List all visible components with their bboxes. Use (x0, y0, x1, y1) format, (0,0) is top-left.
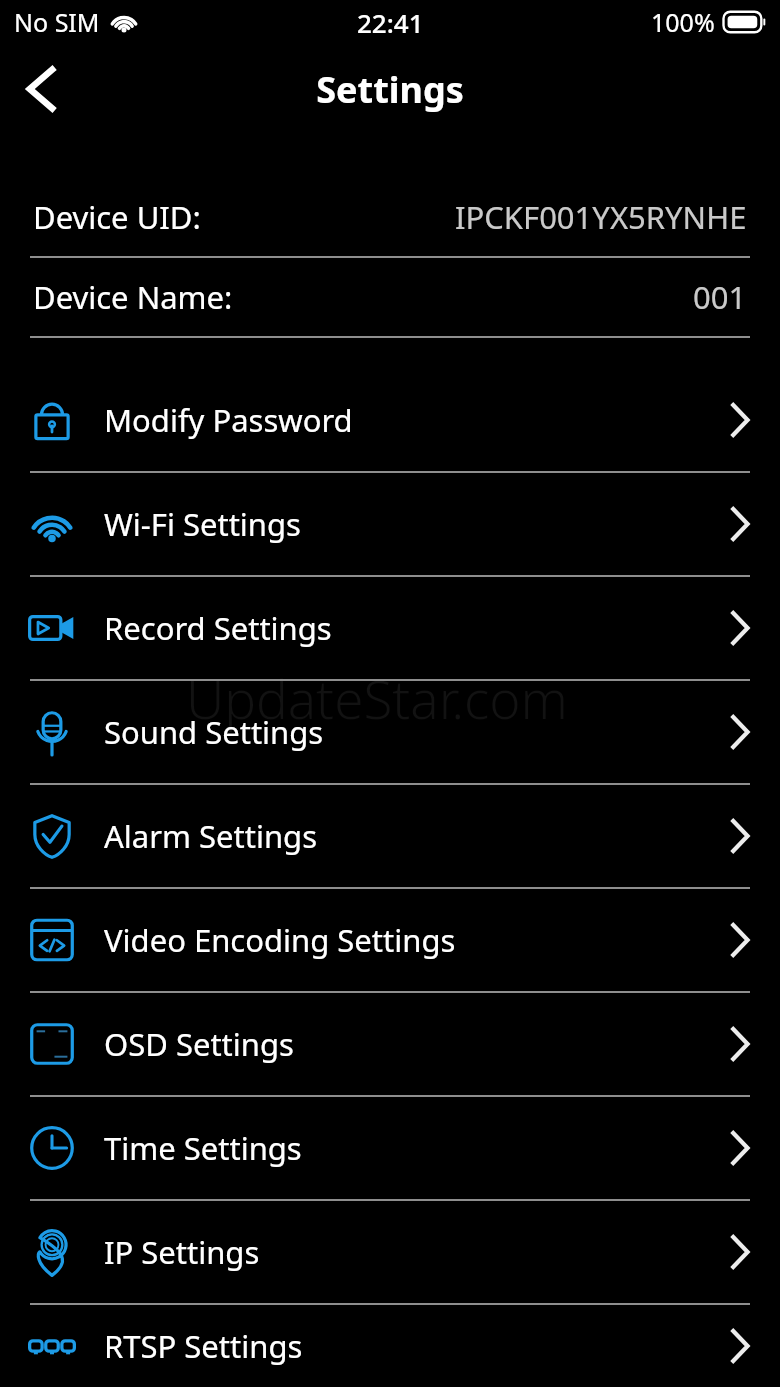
staticText: 100% (651, 5, 715, 39)
button[interactable]: Time Settings (0, 1097, 780, 1199)
staticText: Wi-Fi Settings (104, 503, 301, 545)
staticText: IPCKF001YX5RYNHE (455, 196, 747, 238)
staticText: Device Name: (33, 276, 233, 318)
staticText: Alarm Settings (104, 815, 318, 857)
button[interactable]: Record Settings (0, 577, 780, 679)
button[interactable]: RTSP Settings (0, 1305, 780, 1387)
button[interactable]: OSD Settings (0, 993, 780, 1095)
staticText: UpdateStar.com (186, 662, 568, 734)
staticText: OSD Settings (104, 1023, 294, 1065)
button[interactable]: Back (0, 47, 84, 131)
button[interactable]: Modify Password (0, 369, 780, 471)
staticText: Modify Password (104, 399, 353, 441)
staticText: Time Settings (104, 1127, 302, 1169)
staticText: Sound Settings (104, 711, 324, 753)
button[interactable]: Video Encoding Settings (0, 889, 780, 991)
button[interactable]: Sound Settings (0, 681, 780, 783)
staticText: 001 (693, 276, 747, 318)
staticText: Record Settings (104, 607, 332, 649)
staticText: Device UID: (33, 196, 201, 238)
staticText: Settings (316, 65, 464, 114)
button[interactable]: Alarm Settings (0, 785, 780, 887)
button[interactable]: Device UID: (0, 178, 780, 256)
button[interactable]: Wi-Fi Settings (0, 473, 780, 575)
staticText: Video Encoding Settings (104, 919, 456, 961)
button[interactable]: IP Settings (0, 1201, 780, 1303)
staticText: No SIM (14, 5, 100, 39)
staticText: RTSP Settings (104, 1325, 303, 1367)
staticText: IP Settings (104, 1231, 260, 1273)
button[interactable]: Device Name: (0, 258, 780, 336)
staticText: 22:41 (357, 5, 424, 40)
